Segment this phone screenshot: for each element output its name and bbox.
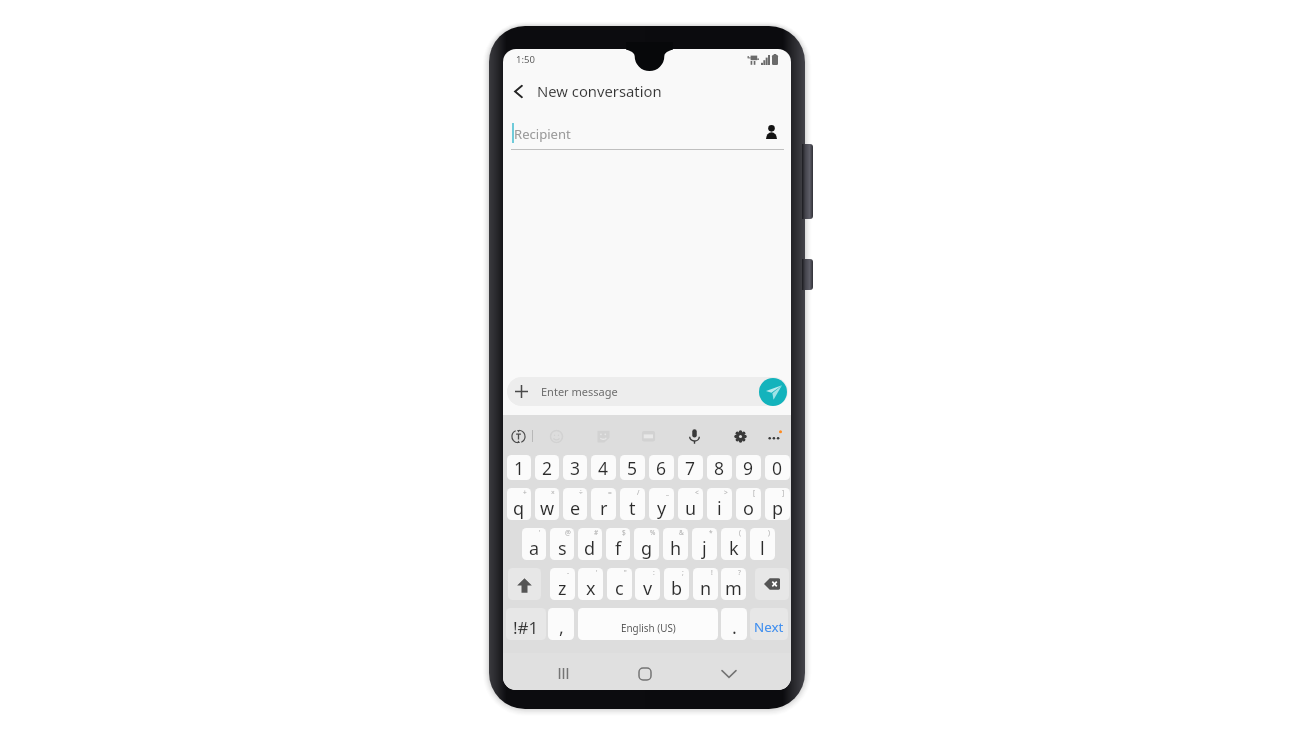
- staticText: 5: [627, 456, 638, 480]
- staticText: a: [529, 536, 540, 560]
- staticText: New conversation: [537, 81, 662, 101]
- button[interactable]: #: [578, 528, 602, 560]
- button[interactable]: Hide keyboard: [709, 653, 749, 690]
- button[interactable]: Send: [759, 378, 787, 406]
- staticText: c: [615, 576, 624, 600]
- staticText: Enter message: [541, 384, 618, 399]
- button[interactable]: More options: [763, 425, 785, 447]
- button[interactable]: =: [591, 488, 616, 520]
- staticText: :: [653, 568, 655, 577]
- staticText: ,: [559, 615, 564, 640]
- button[interactable]: ': [522, 528, 546, 560]
- staticText: ÷: [579, 488, 583, 497]
- button[interactable]: 3: [563, 455, 587, 480]
- staticText: !#1: [513, 616, 539, 639]
- staticText: ?: [738, 568, 741, 577]
- button[interactable]: :: [635, 568, 660, 600]
- staticText: *: [709, 528, 713, 537]
- staticText: 7: [685, 456, 696, 480]
- button[interactable]: ': [578, 568, 603, 600]
- button[interactable]: >: [707, 488, 732, 520]
- staticText: [: [753, 488, 756, 497]
- button[interactable]: ÷: [563, 488, 587, 520]
- staticText: ': [539, 528, 541, 537]
- button[interactable]: !: [693, 568, 718, 600]
- button[interactable]: Backspace: [755, 568, 789, 600]
- button[interactable]: _: [649, 488, 674, 520]
- button[interactable]: Recent apps: [543, 653, 583, 690]
- staticText: g: [641, 536, 653, 560]
- staticText: h: [670, 536, 682, 560]
- button[interactable]: 6: [649, 455, 674, 480]
- button[interactable]: <: [678, 488, 703, 520]
- staticText: ×: [551, 488, 555, 497]
- button[interactable]: Home: [625, 653, 665, 690]
- staticText: (: [739, 528, 741, 537]
- staticText: l: [760, 536, 765, 560]
- button[interactable]: ;: [664, 568, 689, 600]
- button[interactable]: Emoji: [545, 425, 567, 447]
- staticText: j: [702, 536, 707, 560]
- button[interactable]: ]: [765, 488, 790, 520]
- button[interactable]: $: [606, 528, 630, 560]
- button[interactable]: &: [663, 528, 688, 560]
- button[interactable]: Keyboard settings: [729, 425, 751, 447]
- button[interactable]: 1: [507, 455, 531, 480]
- button[interactable]: Stickers: [592, 425, 614, 447]
- button[interactable]: *: [692, 528, 717, 560]
- staticText: !: [711, 568, 713, 577]
- button[interactable]: Translate: [507, 425, 529, 447]
- button[interactable]: 0: [765, 455, 790, 480]
- button[interactable]: ): [750, 528, 775, 560]
- staticText: >: [724, 488, 728, 497]
- button[interactable]: Voice input: [683, 425, 705, 447]
- button[interactable]: 4: [591, 455, 616, 480]
- button[interactable]: English (US): [578, 608, 718, 640]
- button[interactable]: ,: [548, 608, 574, 640]
- button[interactable]: /: [620, 488, 645, 520]
- staticText: English (US): [621, 621, 676, 634]
- staticText: v: [643, 576, 653, 600]
- button[interactable]: 7: [678, 455, 703, 480]
- staticText: @: [565, 528, 571, 537]
- button[interactable]: ": [607, 568, 632, 600]
- button[interactable]: Next: [750, 608, 788, 640]
- button[interactable]: -: [550, 568, 575, 600]
- staticText: t: [629, 496, 636, 520]
- staticText: ]: [782, 488, 785, 497]
- staticText: $: [622, 528, 626, 537]
- staticText: 1:50: [516, 53, 535, 66]
- staticText: m: [725, 576, 742, 600]
- button[interactable]: (: [721, 528, 746, 560]
- button[interactable]: 9: [736, 455, 761, 480]
- button[interactable]: Recipient: [503, 112, 791, 152]
- staticText: .: [732, 615, 737, 640]
- button[interactable]: [: [736, 488, 761, 520]
- button[interactable]: 5: [620, 455, 645, 480]
- staticText: q: [513, 496, 525, 520]
- staticText: ': [596, 568, 598, 577]
- staticText: n: [700, 576, 712, 600]
- staticText: o: [743, 496, 754, 520]
- button[interactable]: 2: [535, 455, 559, 480]
- button[interactable]: !#1: [506, 608, 546, 640]
- staticText: f: [615, 536, 622, 560]
- staticText: <: [695, 488, 699, 497]
- button[interactable]: 8: [707, 455, 732, 480]
- button[interactable]: .: [721, 608, 747, 640]
- staticText: w: [540, 496, 555, 520]
- button[interactable]: ×: [535, 488, 559, 520]
- staticText: +: [523, 488, 527, 497]
- button[interactable]: Shift: [508, 568, 541, 600]
- button[interactable]: Back: [503, 72, 533, 110]
- button[interactable]: @: [550, 528, 574, 560]
- button[interactable]: %: [634, 528, 659, 560]
- button[interactable]: Enter message: [507, 377, 788, 406]
- staticText: =: [608, 488, 612, 497]
- button[interactable]: ?: [721, 568, 746, 600]
- button[interactable]: Choose contact: [760, 121, 782, 143]
- staticText: 1: [514, 456, 525, 480]
- staticText: s: [558, 536, 567, 560]
- button[interactable]: GIF: [637, 425, 659, 447]
- button[interactable]: +: [507, 488, 531, 520]
